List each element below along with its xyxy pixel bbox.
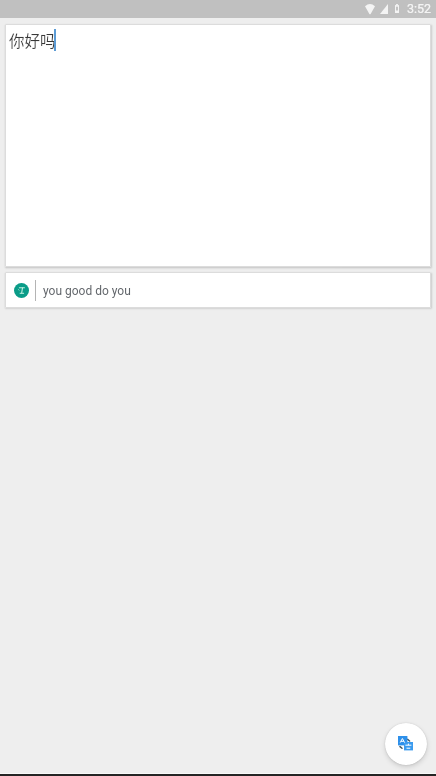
- button[interactable]: 你好吗: [5, 24, 431, 267]
- staticText: 你好吗: [9, 29, 56, 51]
- staticText: 3:52: [407, 1, 432, 16]
- staticText: you good do you: [43, 284, 131, 298]
- button[interactable]: Translate: [385, 723, 427, 765]
- button[interactable]: you good do you: [5, 272, 431, 308]
